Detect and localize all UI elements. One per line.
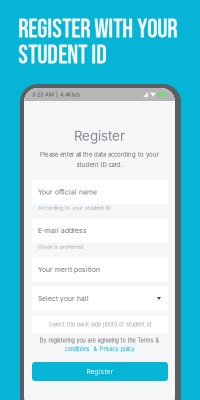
staticText: student ID card. bbox=[76, 161, 122, 169]
staticText: Gmail is preferred bbox=[38, 243, 83, 250]
staticText: E-mail address bbox=[38, 226, 87, 235]
staticText: STUDENT ID bbox=[18, 40, 107, 71]
staticText: 3:23 AM | 4.4Kb/s bbox=[32, 91, 80, 98]
button[interactable]: Select the back side photo of student id bbox=[32, 316, 168, 333]
staticText: Select the back side photo of student id bbox=[49, 321, 151, 328]
staticText: conditions & Privacy policy bbox=[64, 346, 134, 353]
staticText: By registering you are agreeing to the T… bbox=[39, 337, 159, 344]
button[interactable]: E-mail address bbox=[32, 218, 168, 242]
button[interactable]: Select your hall bbox=[32, 286, 168, 310]
staticText: Please enter all the data according to y… bbox=[40, 151, 159, 158]
staticText: Register bbox=[86, 367, 113, 376]
staticText: REGISTER WITH YOUR bbox=[18, 14, 177, 45]
button[interactable]: Your official name bbox=[32, 180, 168, 204]
staticText: Register bbox=[74, 128, 125, 144]
button[interactable]: Your merit position bbox=[32, 257, 168, 281]
staticText: Your merit position bbox=[38, 265, 100, 274]
staticText: Your official name bbox=[38, 188, 97, 196]
staticText: According to your student ID bbox=[38, 204, 111, 211]
staticText: Select your hall bbox=[38, 294, 89, 303]
button[interactable]: Register bbox=[32, 362, 168, 381]
